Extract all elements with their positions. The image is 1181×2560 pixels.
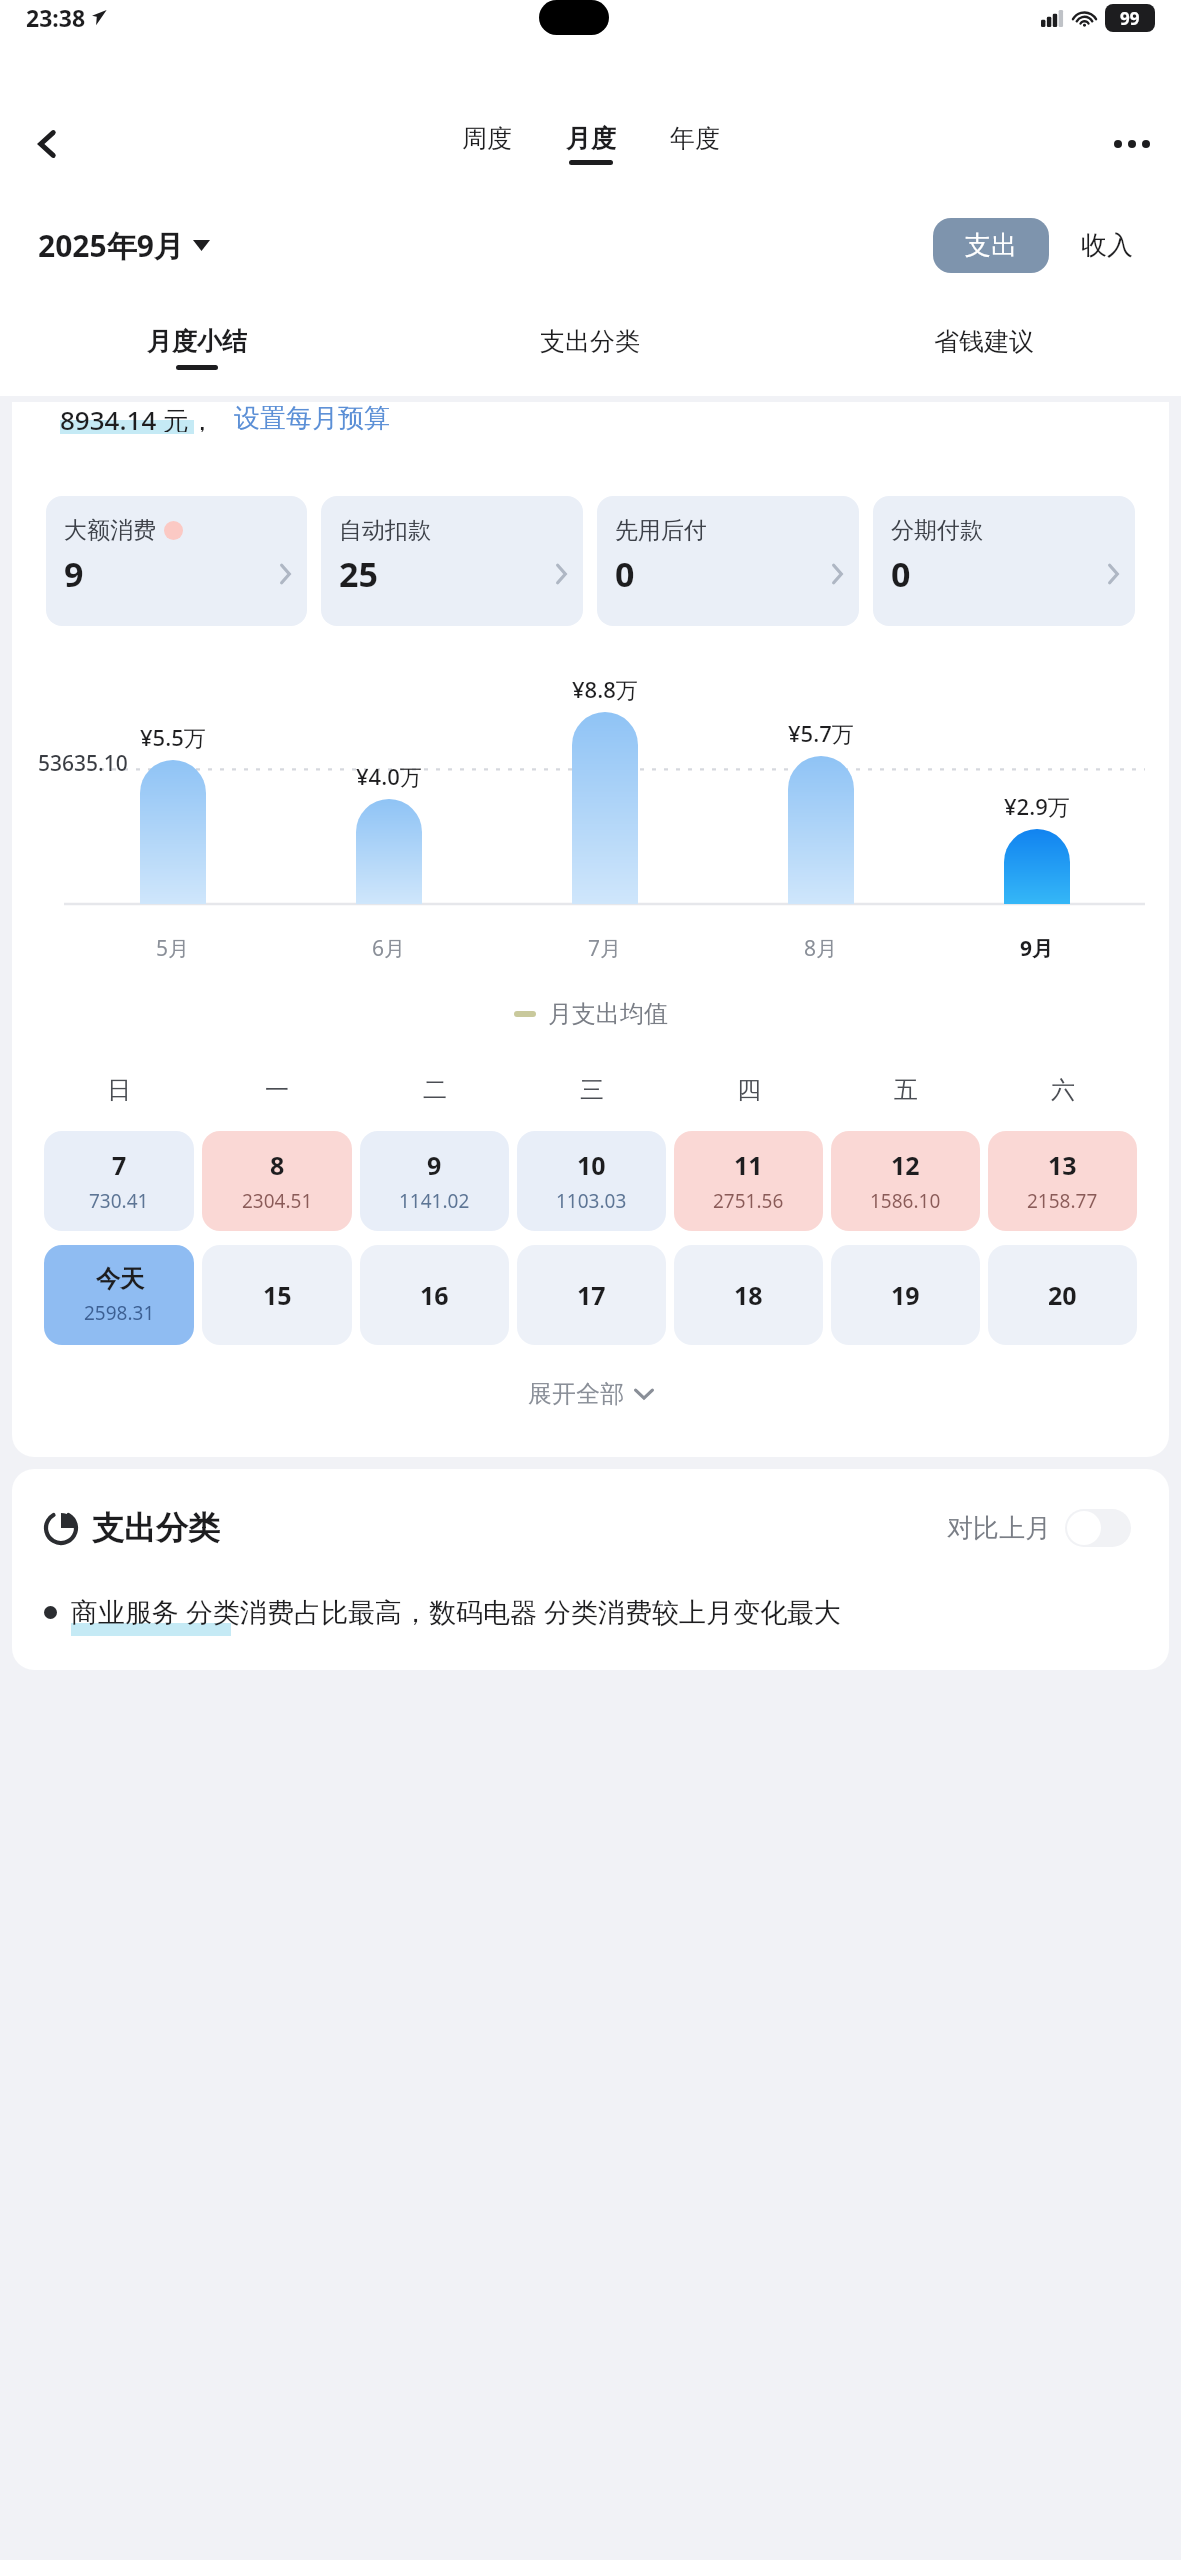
staticText: 先用后付 — [615, 516, 707, 545]
staticText: 15 — [263, 1278, 292, 1312]
staticText: 99 — [1120, 7, 1140, 30]
staticText: 20 — [1048, 1278, 1077, 1312]
staticText: 月度 — [566, 123, 616, 154]
button[interactable] — [356, 799, 422, 904]
staticText: 25 — [339, 551, 378, 597]
button[interactable] — [788, 756, 854, 904]
staticText: 8934.14 元， — [60, 402, 216, 432]
staticText: 0 — [615, 551, 635, 597]
button[interactable] — [572, 712, 638, 904]
staticText: 支出分类 — [540, 326, 640, 357]
staticText: 9月 — [1020, 934, 1054, 963]
button[interactable]: 19 — [831, 1245, 980, 1345]
staticText: 9 — [427, 1148, 442, 1182]
button[interactable]: 12 — [831, 1131, 980, 1231]
button[interactable]: 月度 — [560, 119, 622, 169]
staticText: 展开全部 — [528, 1379, 624, 1409]
button[interactable] — [1004, 829, 1070, 904]
staticText: 二 — [423, 1075, 447, 1105]
staticText: 一 — [265, 1075, 289, 1105]
staticText: 53635.10 — [38, 749, 128, 778]
staticText: ¥4.0万 — [356, 761, 422, 791]
button[interactable]: 展开全部 — [12, 1365, 1169, 1423]
button[interactable]: 16 — [360, 1245, 509, 1345]
staticText: 17 — [577, 1278, 606, 1312]
staticText: 18 — [734, 1278, 763, 1312]
button[interactable]: 对比上月 — [941, 1503, 1137, 1553]
button[interactable]: 收入 — [1071, 218, 1143, 273]
staticText: 日 — [107, 1075, 131, 1105]
staticText: 16 — [420, 1278, 449, 1312]
staticText: 六 — [1051, 1075, 1075, 1105]
staticText: ¥5.7万 — [788, 718, 854, 748]
staticText: 年度 — [670, 123, 720, 154]
button[interactable]: 大额消费 — [46, 496, 307, 626]
staticText: 9 — [64, 551, 84, 597]
staticText: 10 — [577, 1148, 606, 1182]
staticText: 12 — [891, 1148, 920, 1182]
staticText: 五 — [894, 1075, 918, 1105]
staticText: 7月 — [588, 934, 622, 963]
button[interactable]: 省钱建议 — [787, 300, 1181, 396]
staticText: 大额消费 — [64, 516, 156, 545]
staticText: 13 — [1048, 1148, 1077, 1182]
button[interactable]: 先用后付 — [597, 496, 859, 626]
button[interactable]: Back — [18, 114, 78, 174]
staticText: ¥2.9万 — [1004, 791, 1070, 821]
button[interactable]: 周度 — [456, 119, 518, 169]
button[interactable]: 支出分类 — [393, 300, 787, 396]
button[interactable]: 年度 — [664, 119, 726, 169]
staticText: 2751.56 — [713, 1188, 784, 1214]
staticText: 月度小结 — [147, 326, 247, 357]
staticText: 8 — [270, 1148, 285, 1182]
staticText: 2158.77 — [1027, 1188, 1098, 1214]
staticText: 商业服务 分类消费占比最高，数码电器 分类消费较上月变化最大 — [71, 1593, 842, 1630]
staticText: 19 — [891, 1278, 920, 1312]
button[interactable]: 13 — [988, 1131, 1137, 1231]
staticText: 收入 — [1081, 229, 1133, 262]
staticText: 730.41 — [89, 1188, 149, 1214]
button[interactable]: 7 — [44, 1131, 194, 1231]
staticText: 三 — [580, 1075, 604, 1105]
staticText: 2304.51 — [242, 1188, 313, 1214]
button[interactable]: 月度小结 — [0, 300, 393, 396]
button[interactable]: 分期付款 — [873, 496, 1135, 626]
staticText: 11 — [734, 1148, 763, 1182]
button[interactable]: 20 — [988, 1245, 1137, 1345]
button[interactable]: 11 — [674, 1131, 823, 1231]
staticText: 支出分类 — [92, 1508, 220, 1548]
staticText: 周度 — [462, 123, 512, 154]
staticText: 0 — [891, 551, 911, 597]
staticText: 自动扣款 — [339, 516, 431, 545]
button[interactable]: 今天 — [44, 1245, 194, 1345]
staticText: 7 — [112, 1148, 127, 1182]
staticText: 对比上月 — [947, 1512, 1051, 1545]
staticText: 1103.03 — [556, 1188, 627, 1214]
button[interactable]: 2025年9月 — [38, 219, 210, 272]
staticText: 今天 — [96, 1264, 144, 1294]
button[interactable]: 9 — [360, 1131, 509, 1231]
button[interactable]: 18 — [674, 1245, 823, 1345]
staticText: 2025年9月 — [38, 225, 184, 266]
button[interactable]: 10 — [517, 1131, 666, 1231]
staticText: 分期付款 — [891, 516, 983, 545]
staticText: 月支出均值 — [548, 999, 668, 1029]
button[interactable] — [140, 760, 206, 904]
staticText: 6月 — [372, 934, 406, 963]
button[interactable]: 8 — [202, 1131, 352, 1231]
staticText: ¥8.8万 — [572, 674, 638, 704]
staticText: 四 — [737, 1075, 761, 1105]
staticText: ¥5.5万 — [140, 722, 206, 752]
staticText: 2598.31 — [84, 1300, 155, 1326]
staticText: 5月 — [156, 934, 190, 963]
staticText: 支出 — [965, 229, 1017, 262]
button[interactable]: 17 — [517, 1245, 666, 1345]
staticText: 省钱建议 — [934, 326, 1034, 357]
button[interactable]: More options — [1101, 113, 1163, 175]
button[interactable]: 15 — [202, 1245, 352, 1345]
staticText: 1586.10 — [870, 1188, 941, 1214]
staticText: 1141.02 — [399, 1188, 470, 1214]
button[interactable]: 自动扣款 — [321, 496, 583, 626]
button[interactable]: 支出 — [933, 218, 1049, 273]
staticText: 8月 — [804, 934, 838, 963]
